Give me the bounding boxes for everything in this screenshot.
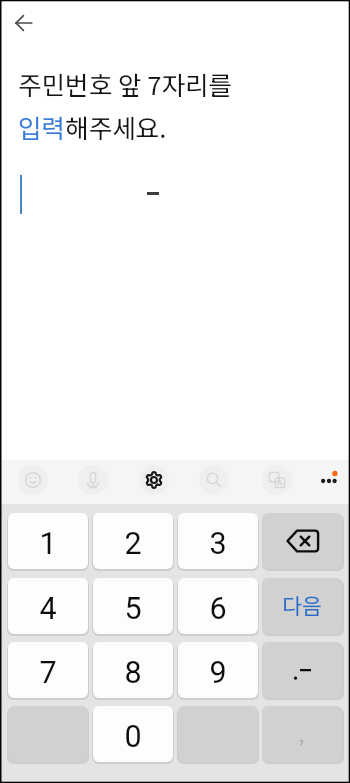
staticText: 2 [124, 526, 142, 562]
staticText: 7 [39, 655, 57, 691]
button[interactable]: Search [199, 465, 229, 495]
button[interactable]: 2 [93, 513, 173, 569]
button[interactable]: 9 [178, 642, 258, 698]
button[interactable]: Back [8, 7, 40, 39]
staticText: 8 [124, 655, 142, 691]
staticText: 3 [209, 526, 227, 562]
staticText: 9 [209, 655, 227, 691]
button[interactable]: 7 [8, 642, 88, 698]
button[interactable]: Translate [262, 465, 292, 495]
staticText: 5 [124, 591, 142, 627]
staticText: 0 [124, 719, 142, 755]
staticText: 6 [209, 591, 227, 627]
button[interactable]: 4 [8, 578, 88, 634]
staticText: 4 [39, 591, 57, 627]
button[interactable]: 5 [93, 578, 173, 634]
button[interactable]: Backspace [262, 513, 342, 569]
button[interactable]: 0 [93, 706, 173, 762]
button[interactable]: Voice input [78, 465, 108, 495]
button[interactable]: Dot dash [262, 642, 342, 698]
button[interactable]: Emoji [18, 465, 48, 495]
button[interactable]: 8 [93, 642, 173, 698]
button[interactable]: Settings [139, 465, 169, 495]
button[interactable]: 6 [178, 578, 258, 634]
staticText: 1 [39, 526, 57, 562]
button[interactable]: 3 [178, 513, 258, 569]
staticText: , [299, 721, 305, 747]
staticText: 다음 [282, 589, 322, 620]
staticText: 주민번호 앞 7자리를 [18, 65, 233, 102]
button[interactable]: 다음 [262, 578, 342, 634]
button[interactable]: More options [313, 465, 345, 497]
staticText: 입력해주세요. [18, 108, 167, 145]
button[interactable]: 1 [8, 513, 88, 569]
